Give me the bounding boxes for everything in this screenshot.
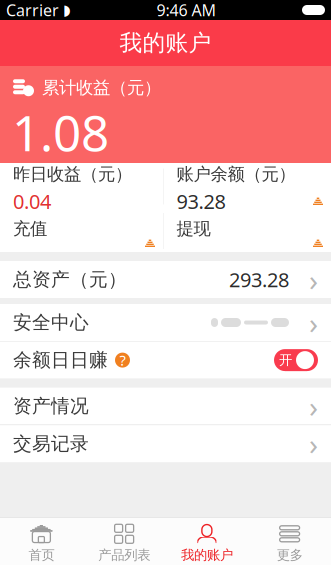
button[interactable]: 总资产（元）: [0, 261, 331, 298]
staticText: 余额日日赚: [13, 349, 108, 371]
button[interactable]: 更多: [248, 518, 331, 565]
staticText: 开: [279, 352, 292, 368]
button[interactable]: 余额日日赚说明: [115, 353, 130, 368]
staticText: ›: [309, 387, 318, 426]
staticText: 93.28: [177, 188, 226, 214]
staticText: 交易记录: [13, 432, 89, 455]
button[interactable]: 我的账户: [165, 518, 248, 565]
staticText: ›: [309, 303, 318, 342]
staticText: 资产情况: [13, 395, 89, 417]
staticText: 9:46 AM: [156, 0, 216, 21]
button[interactable]: 交易记录: [0, 425, 331, 462]
button[interactable]: 产品列表: [83, 518, 166, 565]
button[interactable]: 账户余额（元）: [164, 163, 331, 210]
staticText: 提现: [177, 218, 211, 239]
staticText: 产品列表: [98, 547, 150, 563]
staticText: 0.04: [13, 188, 51, 214]
staticText: ?: [119, 350, 125, 370]
staticText: 更多: [277, 547, 303, 563]
staticText: ›: [309, 424, 318, 463]
button[interactable]: 昨日收益（元）: [0, 163, 163, 210]
staticText: 充值: [13, 218, 47, 239]
staticText: Carrier: [6, 0, 59, 21]
staticText: 我的账户: [119, 29, 211, 57]
staticText: 账户余额（元）: [177, 164, 296, 185]
button[interactable]: 余额日日赚，已开启: [274, 349, 318, 371]
staticText: 累计收益（元）: [42, 77, 161, 98]
button[interactable]: 充值: [0, 210, 163, 252]
button[interactable]: 资产情况: [0, 388, 331, 425]
staticText: 首页: [28, 547, 54, 563]
button[interactable]: 提现: [164, 210, 331, 252]
button[interactable]: 安全中心: [0, 304, 331, 341]
staticText: 1.08: [12, 99, 109, 165]
staticText: ›: [309, 260, 318, 299]
staticText: 昨日收益（元）: [13, 164, 132, 185]
staticText: 总资产（元）: [13, 268, 127, 291]
staticText: 293.28: [229, 266, 289, 293]
button[interactable]: 首页: [0, 518, 83, 565]
staticText: 我的账户: [181, 547, 233, 563]
staticText: ◗: [63, 2, 71, 18]
staticText: 安全中心: [13, 311, 89, 334]
